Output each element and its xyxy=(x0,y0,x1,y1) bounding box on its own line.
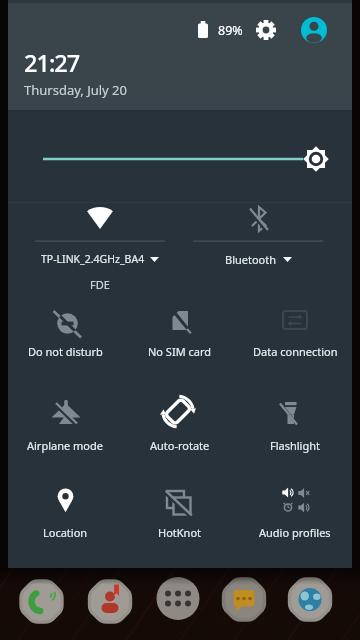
button[interactable]: Data connection xyxy=(238,295,352,383)
button[interactable]: Auto-rotate xyxy=(123,385,237,473)
button[interactable] xyxy=(286,576,334,624)
button[interactable]: Location xyxy=(8,473,122,565)
button[interactable]: HotKnot xyxy=(123,473,237,565)
staticText: 89% xyxy=(218,22,243,39)
button[interactable]: TP-LINK_2.4GHz_BA4 xyxy=(20,200,180,296)
staticText: TP-LINK_2.4GHz_BA4 xyxy=(41,252,145,266)
button[interactable]: Airplane mode xyxy=(8,385,122,473)
staticText: FDE xyxy=(90,277,110,292)
staticText: Bluetooth xyxy=(225,252,277,267)
button[interactable] xyxy=(18,578,66,626)
button[interactable] xyxy=(36,145,330,173)
button[interactable]: Flashlight xyxy=(238,385,352,473)
staticText: 21:27 xyxy=(24,47,80,79)
staticText: Flashlight xyxy=(270,438,320,453)
button[interactable] xyxy=(86,578,134,626)
button[interactable] xyxy=(220,576,268,624)
staticText: Data connection xyxy=(253,344,338,359)
staticText: HotKnot xyxy=(158,525,202,540)
staticText: Auto-rotate xyxy=(150,438,210,453)
button[interactable] xyxy=(300,16,328,44)
button[interactable]: Do not disturb xyxy=(8,295,122,383)
button[interactable]: Audio profiles xyxy=(238,473,352,565)
button[interactable]: Bluetooth xyxy=(178,200,338,296)
button[interactable] xyxy=(252,16,280,44)
staticText: Thursday, July 20 xyxy=(24,81,127,99)
staticText: Airplane mode xyxy=(27,438,103,453)
staticText: No SIM card xyxy=(148,344,212,359)
button[interactable] xyxy=(154,575,202,623)
staticText: Do not disturb xyxy=(28,344,103,359)
button[interactable]: No SIM card xyxy=(123,295,237,383)
staticText: Audio profiles xyxy=(259,525,331,540)
staticText: Location xyxy=(43,525,88,540)
